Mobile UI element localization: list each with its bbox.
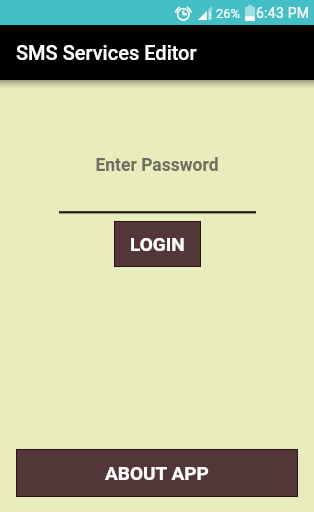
staticText: ABOUT APP: [105, 462, 209, 484]
staticText: Enter Password: [0, 155, 314, 176]
button[interactable]: LOGIN: [115, 222, 200, 266]
staticText: 26%: [216, 6, 241, 21]
other: Mobile signal: [198, 6, 212, 20]
staticText: SMS Services Editor: [16, 41, 197, 64]
other: Alarm set: [175, 6, 190, 21]
staticText: LOGIN: [130, 233, 185, 255]
staticText: 6:43 PM: [256, 5, 310, 21]
other: Battery 26 percent: [245, 5, 255, 21]
button[interactable]: ABOUT APP: [17, 450, 297, 496]
